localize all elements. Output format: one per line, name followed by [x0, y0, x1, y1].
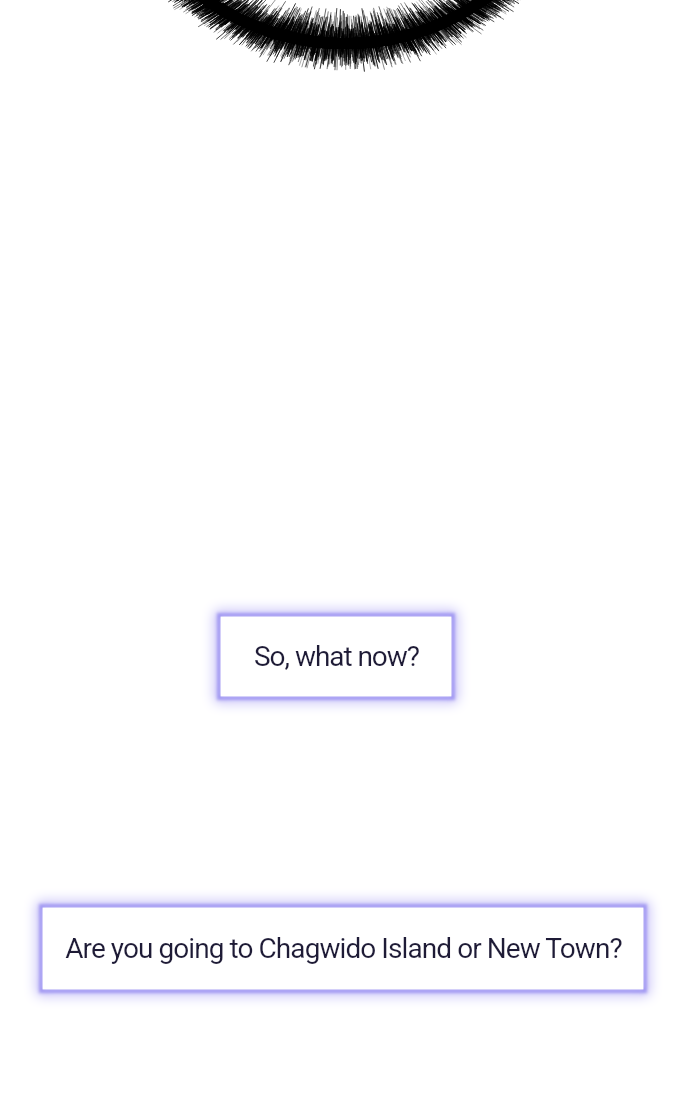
staticText: So, what now? [254, 640, 419, 673]
staticText: Are you going to Chagwido Island or New … [65, 932, 622, 965]
button[interactable]: Are you going to Chagwido Island or New … [39, 904, 647, 993]
button[interactable]: So, what now? [217, 613, 455, 700]
